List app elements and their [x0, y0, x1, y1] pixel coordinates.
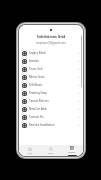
- staticText: Jeweleo: [29, 59, 77, 63]
- button[interactable]: Remote Installation: [19, 121, 83, 129]
- staticText: New Car Back: [29, 107, 77, 111]
- staticText: Home: [27, 152, 33, 155]
- button[interactable]: Legacy Block: [19, 49, 83, 57]
- staticText: Contact Fix: [29, 115, 77, 119]
- staticText: Gift Music: [29, 83, 77, 87]
- staticText: Content: [68, 151, 76, 154]
- button[interactable]: New Car Back: [19, 105, 83, 113]
- button[interactable]: Mirror Suite: [19, 73, 83, 81]
- button[interactable]: Content: [62, 145, 82, 156]
- button[interactable]: Search: [41, 145, 61, 156]
- staticText: Remote Installation: [29, 123, 77, 127]
- button[interactable]: Home: [20, 145, 40, 156]
- staticText: employee33@gmail.com: [36, 41, 66, 45]
- button[interactable]: Tours Unit: [19, 65, 83, 73]
- button[interactable]: Floating Shop: [19, 89, 83, 97]
- button[interactable]: Contact Fix: [19, 113, 83, 121]
- button[interactable]: Jeweleo: [19, 57, 83, 65]
- staticText: Tours Unit: [29, 67, 77, 71]
- staticText: Exhibitions Grid: [37, 34, 66, 39]
- staticText: Floating Shop: [29, 91, 77, 95]
- staticText: Canvas Mirrors: [29, 99, 77, 103]
- staticText: Legacy Block: [29, 51, 77, 55]
- button[interactable]: Gift Music: [19, 81, 83, 89]
- staticText: Search: [48, 152, 54, 155]
- staticText: Mirror Suite: [29, 75, 77, 79]
- button[interactable]: Canvas Mirrors: [19, 97, 83, 105]
